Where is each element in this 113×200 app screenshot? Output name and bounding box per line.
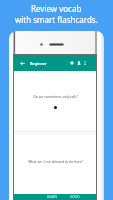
staticText: AGAIN: [47, 195, 57, 199]
button[interactable]: GOOD: [68, 194, 82, 200]
staticText: Do we sometimes only talk?: [33, 94, 78, 99]
button[interactable]: AGAIN: [45, 194, 59, 200]
staticText: What am I not allowed to do here?: [28, 159, 83, 164]
button[interactable]: Back: [18, 59, 26, 67]
staticText: Beginner: [30, 61, 47, 66]
staticText: with smart flashcards.: [15, 14, 98, 25]
button[interactable]: More options: [81, 59, 89, 67]
staticText: Review vocab: [31, 3, 82, 14]
button[interactable]: Account: [75, 59, 83, 67]
staticText: GOOD: [70, 195, 80, 199]
button[interactable]: Hint: [68, 59, 76, 67]
